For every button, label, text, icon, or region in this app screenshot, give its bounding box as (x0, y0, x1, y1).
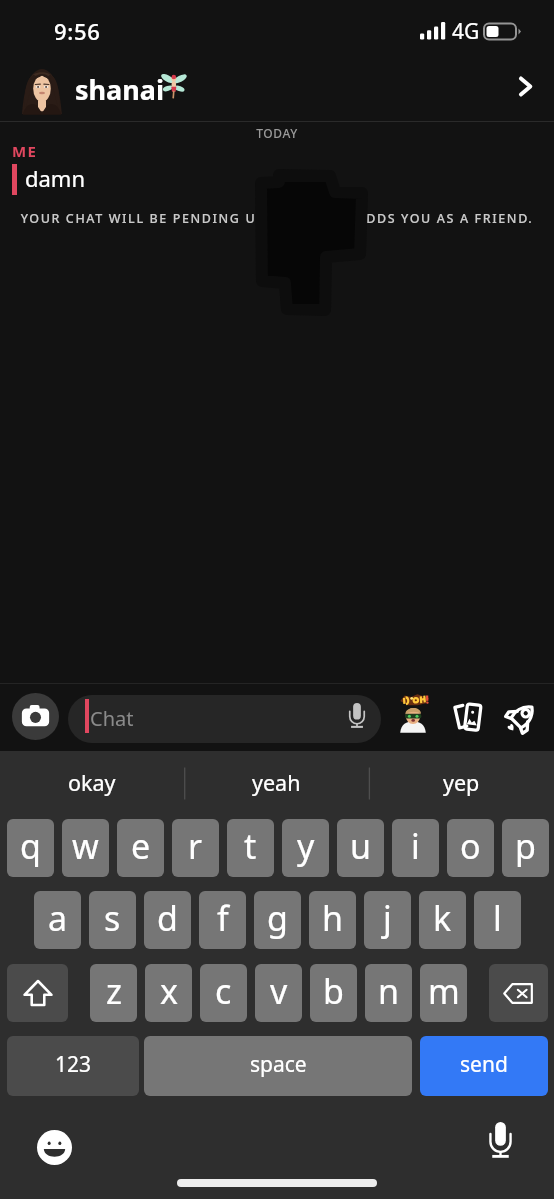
button[interactable]: Bitmoji sticker (392, 691, 434, 733)
staticText: shanai (75, 71, 165, 108)
staticText: 4G (452, 17, 480, 46)
button[interactable]: yeah (184, 751, 369, 807)
staticText: yep (443, 768, 480, 797)
button[interactable]: Open conversation (502, 63, 549, 110)
staticText: x (160, 968, 178, 1014)
staticText: okay (68, 768, 116, 797)
button[interactable]: r (172, 819, 219, 877)
button[interactable]: u (337, 819, 384, 877)
button[interactable]: shanai (0, 56, 554, 118)
staticText: Chat (90, 705, 134, 732)
button[interactable]: h (309, 891, 356, 949)
button[interactable]: k (419, 891, 466, 949)
button[interactable]: yep (369, 751, 554, 807)
staticText: TODAY (0, 125, 554, 141)
staticText: r (188, 823, 203, 869)
staticText: i (411, 823, 420, 869)
staticText: u (350, 823, 372, 869)
button[interactable] (68, 695, 381, 743)
staticText: d (157, 895, 178, 941)
button[interactable]: 123 (7, 1036, 139, 1096)
staticText: 123 (55, 1050, 92, 1079)
staticText: b (323, 968, 344, 1014)
button[interactable]: d (144, 891, 191, 949)
staticText: p (515, 823, 536, 869)
button[interactable]: a (34, 891, 81, 949)
button[interactable]: Camera (12, 693, 59, 740)
staticText: f (217, 895, 229, 941)
button[interactable]: b (310, 964, 357, 1022)
staticText: w (72, 823, 99, 869)
button[interactable]: Dictation (481, 1121, 519, 1159)
staticText: yeah (252, 768, 301, 797)
staticText: y (297, 823, 315, 869)
staticText: z (106, 968, 122, 1014)
button[interactable]: l (474, 891, 521, 949)
staticText: k (433, 895, 452, 941)
button[interactable]: p (502, 819, 549, 877)
staticText: g (267, 895, 288, 941)
staticText: YOUR CHAT WILL BE PENDING UNTIL SHANAI A… (0, 210, 554, 227)
staticText: 9:56 (54, 16, 101, 46)
button[interactable]: x (145, 964, 192, 1022)
staticText: q (20, 823, 41, 869)
staticText: c (215, 968, 232, 1014)
button[interactable]: o (447, 819, 494, 877)
staticText: s (104, 895, 121, 941)
button[interactable]: n (365, 964, 412, 1022)
button[interactable]: s (89, 891, 136, 949)
button[interactable]: Memories (447, 696, 489, 738)
button[interactable]: send (420, 1036, 548, 1096)
staticText: l (493, 895, 502, 941)
staticText: h (322, 895, 344, 941)
staticText: a (48, 895, 68, 941)
staticText: e (131, 823, 151, 869)
button[interactable]: e (117, 819, 164, 877)
button[interactable]: Voice message (337, 695, 377, 735)
button[interactable]: c (200, 964, 247, 1022)
staticText: v (270, 968, 288, 1014)
button[interactable]: Emoji keyboard (36, 1129, 72, 1165)
staticText: o (460, 823, 481, 869)
button[interactable]: q (7, 819, 54, 877)
button[interactable]: Shift (7, 964, 68, 1022)
staticText: n (378, 968, 400, 1014)
button[interactable]: f (199, 891, 246, 949)
button[interactable]: v (255, 964, 302, 1022)
button[interactable]: w (62, 819, 109, 877)
button[interactable]: g (254, 891, 301, 949)
button[interactable]: t (227, 819, 274, 877)
button[interactable]: space (144, 1036, 412, 1096)
button[interactable]: okay (0, 751, 184, 807)
button[interactable]: m (420, 964, 467, 1022)
staticText: m (428, 968, 460, 1014)
staticText: damn (25, 163, 86, 193)
staticText: ME (12, 141, 38, 161)
staticText: space (250, 1050, 307, 1079)
button[interactable]: i (392, 819, 439, 877)
staticText: j (383, 895, 392, 941)
staticText: t (244, 823, 257, 869)
button[interactable]: j (364, 891, 411, 949)
button[interactable]: Backspace (489, 964, 548, 1022)
button[interactable]: Rocket (500, 696, 542, 738)
button[interactable]: z (90, 964, 137, 1022)
staticText: send (460, 1050, 508, 1079)
button[interactable]: y (282, 819, 329, 877)
